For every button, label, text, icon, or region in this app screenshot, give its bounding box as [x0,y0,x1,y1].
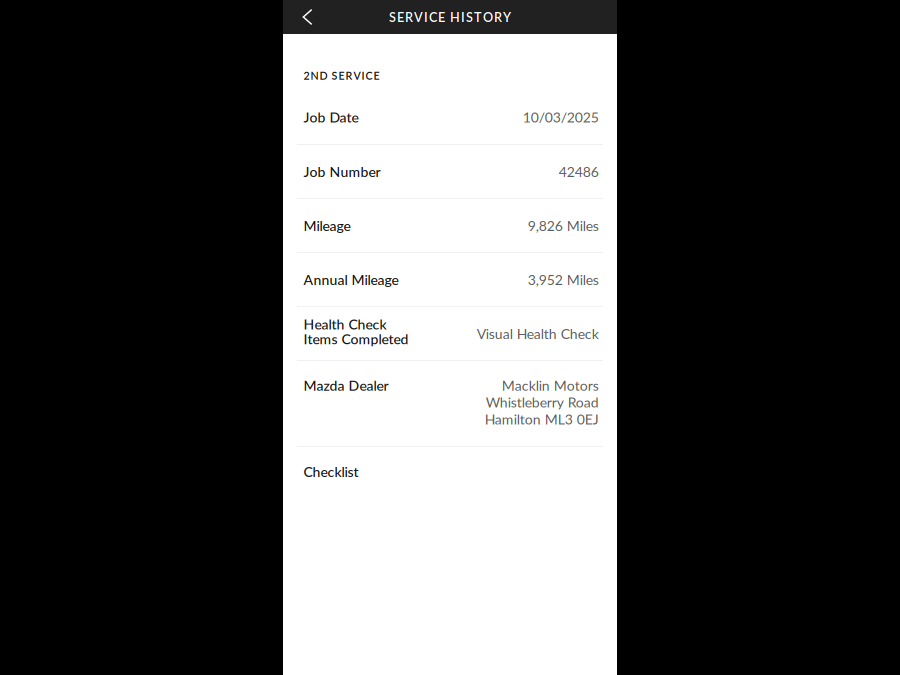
staticText: Visual Health Check [477,325,599,342]
staticText: 3,952 Miles [528,271,599,288]
staticText: Whistleberry Road [486,394,599,411]
button[interactable]: Job Number [283,145,617,198]
staticText: Annual Mileage [303,271,398,288]
button[interactable]: Mazda Dealer [283,361,617,446]
staticText: Mileage [303,217,350,234]
staticText: Items Completed [303,330,408,347]
staticText: Job Number [303,163,380,180]
button[interactable]: Checklist [283,447,617,496]
staticText: 42486 [559,163,599,180]
staticText: 9,826 Miles [528,217,599,234]
staticText: Hamilton ML3 0EJ [485,411,599,427]
button[interactable]: Job Date [283,90,617,144]
staticText: Mazda Dealer [303,377,388,394]
button[interactable]: Health Check [283,307,617,360]
staticText: 10/03/2025 [523,109,599,125]
button[interactable]: Mileage [283,199,617,252]
staticText: Macklin Motors [502,377,599,394]
staticText: 2 N D S E R V I C E [303,69,379,82]
staticText: Checklist [303,463,358,480]
button[interactable]: Back [283,0,332,34]
button[interactable]: Annual Mileage [283,253,617,306]
staticText: S E R V I C E H I S T O R Y [389,9,511,25]
staticText: Health Check [303,316,386,332]
staticText: Job Date [303,109,358,125]
